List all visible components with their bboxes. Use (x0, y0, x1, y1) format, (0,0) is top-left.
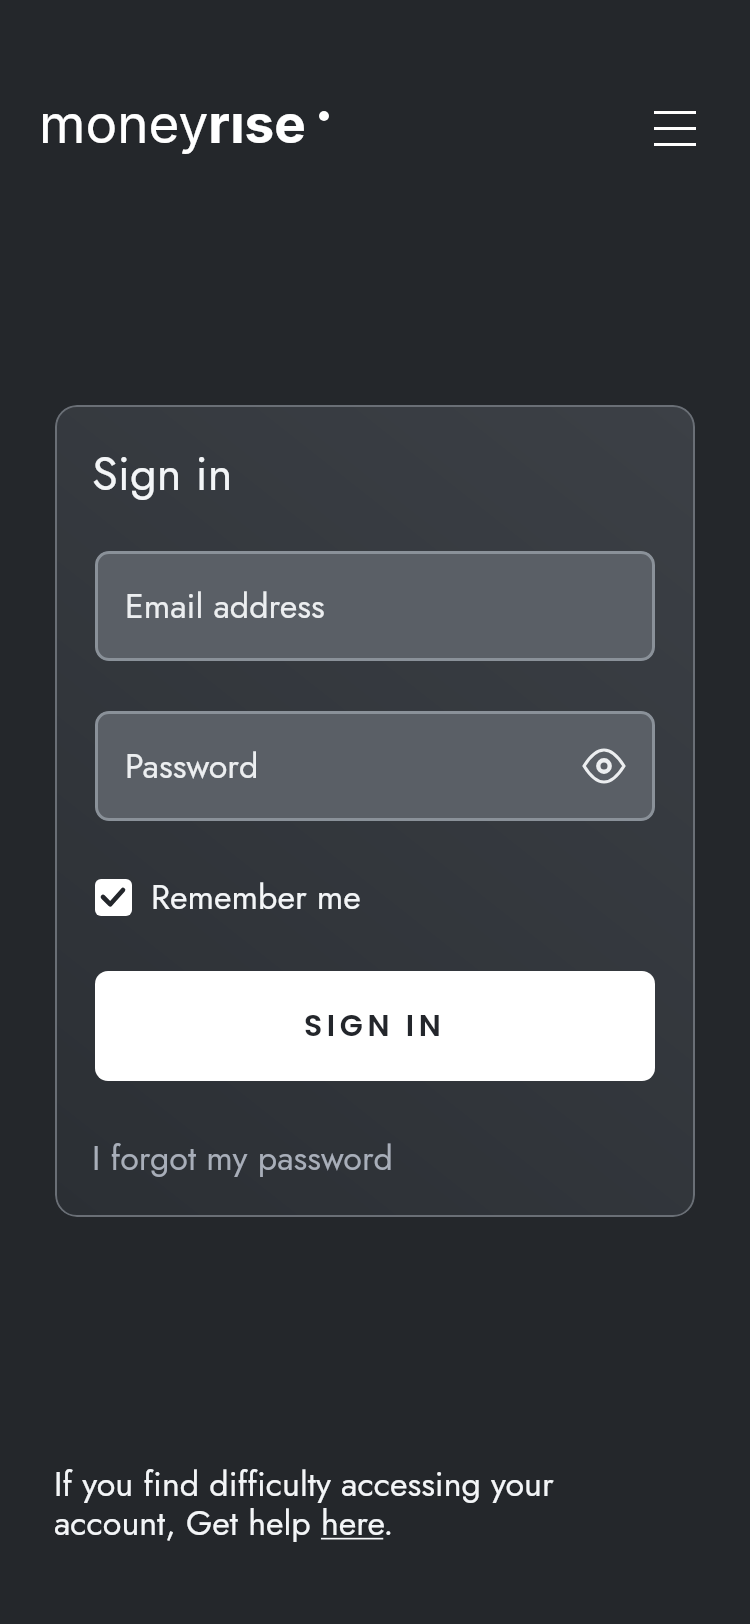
button[interactable]: SIGN IN (95, 971, 655, 1081)
staticText: Sign in (92, 440, 233, 508)
button[interactable]: Remember me (95, 873, 361, 922)
staticText: If you find difficulty accessing your (54, 1460, 554, 1509)
button[interactable]: Email address (95, 551, 655, 661)
staticText: Email address (125, 582, 325, 631)
staticText: moneyrıse (39, 92, 306, 156)
button[interactable]: Password (95, 711, 655, 821)
staticText: Password (125, 742, 259, 791)
staticText: account, Get help here. (54, 1499, 394, 1548)
staticText: Remember me (151, 873, 361, 922)
button[interactable]: I forgot my password (92, 1134, 393, 1183)
staticText: SIGN IN (304, 1005, 446, 1047)
button[interactable] (646, 100, 704, 156)
